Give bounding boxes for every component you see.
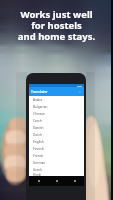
staticText: Greek	[33, 168, 42, 172]
button[interactable]: Bulgarian	[29, 103, 84, 110]
button[interactable]: Recents	[66, 176, 84, 186]
button[interactable]: Czech	[29, 117, 84, 124]
button[interactable]: English	[29, 138, 84, 145]
button[interactable]: Back	[29, 176, 48, 186]
staticText: Dutch	[33, 133, 42, 137]
staticText: Chinese	[33, 112, 45, 116]
button[interactable]: German	[29, 159, 84, 166]
button[interactable]: Danish	[29, 124, 84, 131]
other: More	[78, 90, 82, 94]
staticText: German	[33, 161, 46, 165]
button[interactable]: Greek	[29, 166, 84, 173]
staticText: Danish	[33, 126, 44, 130]
button[interactable]: Dutch	[29, 131, 84, 138]
staticText: 4:20	[77, 84, 82, 87]
staticText: Arabic	[33, 98, 43, 102]
button[interactable]: French	[29, 152, 84, 159]
staticText: Finnish	[33, 147, 44, 151]
staticText: for hostels	[0, 19, 113, 32]
staticText: Hindi	[33, 173, 41, 176]
staticText: Czech	[33, 119, 42, 123]
staticText: English	[33, 140, 44, 144]
staticText: French	[33, 154, 44, 158]
staticText: Bulgarian	[33, 105, 48, 109]
button[interactable]: Home	[48, 176, 66, 186]
button[interactable]: Translator	[29, 87, 84, 96]
button[interactable]: Chinese	[29, 110, 84, 117]
staticText: and home stays.	[0, 30, 113, 43]
button[interactable]: Finnish	[29, 145, 84, 152]
button[interactable]: Arabic	[29, 96, 84, 103]
button[interactable]: Hindi	[29, 173, 84, 176]
staticText: Translator	[31, 89, 48, 94]
staticText: Works just well	[0, 8, 113, 21]
